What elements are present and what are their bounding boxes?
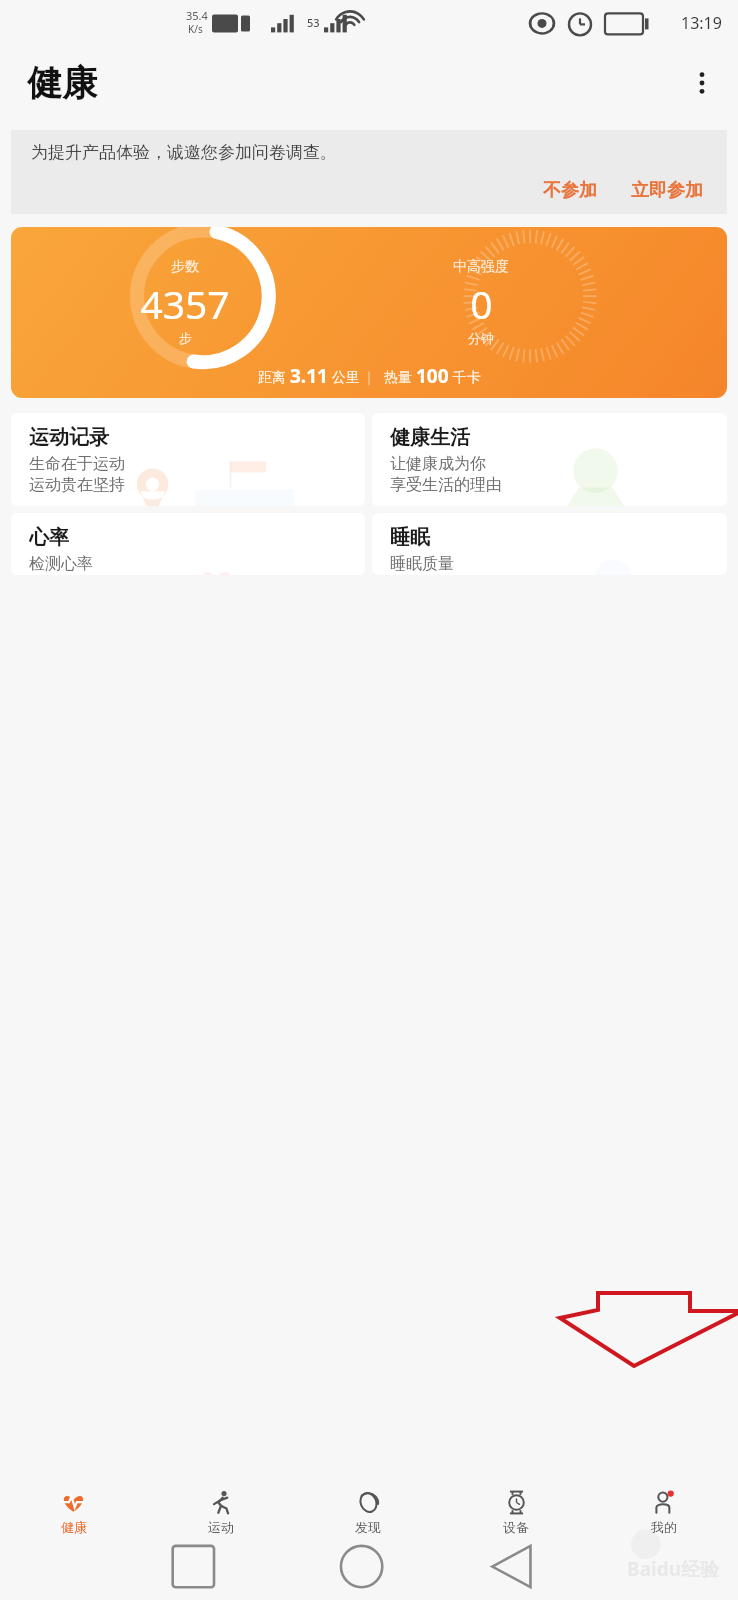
button[interactable]: 我的 (590, 1485, 738, 1538)
staticText: 步数 (171, 258, 199, 276)
button[interactable]: 立即参加 (627, 177, 707, 204)
button[interactable]: 运动 (147, 1485, 294, 1538)
staticText: 立即参加 (631, 179, 703, 202)
staticText: 睡眠 (390, 525, 430, 550)
button[interactable]: 健康生活 (372, 413, 727, 506)
staticText: 生命在于运动 (29, 454, 125, 474)
staticText: 公里 (328, 367, 360, 386)
staticText: 设备 (503, 1519, 529, 1535)
button[interactable]: 设备 (442, 1485, 590, 1538)
staticText: 不参加 (543, 179, 597, 202)
staticText: 我的 (651, 1519, 677, 1535)
staticText: 为提升产品体验，诚邀您参加问卷调查。 (31, 142, 337, 163)
staticText: 健康生活 (390, 425, 470, 450)
staticText: 3.11 (290, 363, 328, 389)
staticText: 距离 (258, 367, 290, 386)
staticText: 健康 (27, 61, 97, 105)
button[interactable]: 发现 (294, 1485, 442, 1538)
staticText: 运动 (208, 1519, 234, 1535)
staticText: 步 (179, 330, 192, 346)
button[interactable]: 心率 (11, 513, 365, 575)
staticText: 睡眠质量 (390, 554, 454, 574)
button[interactable]: More options (680, 61, 724, 105)
staticText: 运动贵在坚持 (29, 475, 125, 495)
staticText: Baidu经验 (627, 1556, 720, 1582)
staticText: 53 (307, 15, 320, 30)
staticText: 运动记录 (29, 425, 109, 450)
staticText: 千卡 (449, 367, 481, 386)
button[interactable]: 运动记录 (11, 413, 365, 506)
button[interactable]: 步数 (11, 227, 727, 398)
staticText: 享受生活的理由 (390, 475, 502, 495)
button[interactable]: 不参加 (539, 177, 601, 204)
staticText: 100 (416, 363, 449, 389)
staticText: K/s (188, 22, 203, 36)
staticText: 发现 (355, 1519, 381, 1535)
staticText: 35.4 (186, 8, 208, 23)
staticText: 0 (470, 277, 493, 330)
staticText: 4357 (140, 277, 230, 330)
staticText: 分钟 (468, 330, 494, 346)
staticText: 健康 (61, 1519, 87, 1535)
button[interactable]: 健康 (0, 1485, 147, 1538)
staticText: 中高强度 (453, 258, 509, 276)
staticText: 让健康成为你 (390, 454, 486, 474)
staticText: 心率 (29, 525, 69, 550)
staticText: 热量 (384, 367, 416, 386)
staticText: 检测心率 (29, 554, 93, 574)
button[interactable]: 睡眠 (372, 513, 727, 575)
staticText: 13:19 (681, 12, 722, 34)
